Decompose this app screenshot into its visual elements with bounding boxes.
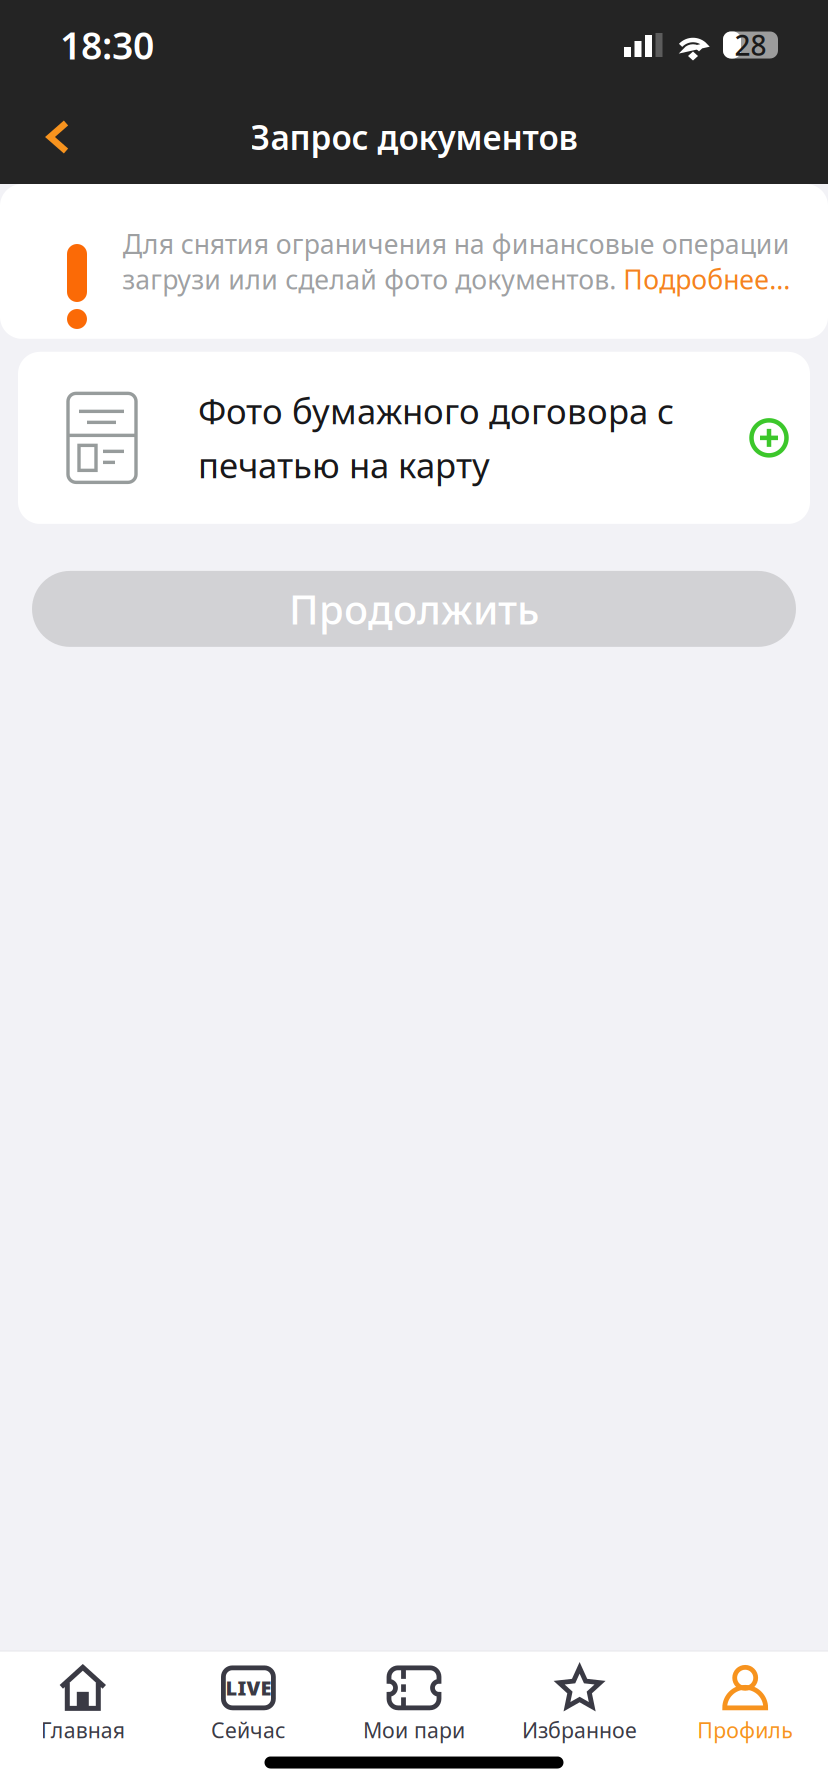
staticText: Главная — [41, 1716, 125, 1744]
button[interactable]: Профиль — [662, 1648, 828, 1752]
button[interactable]: Фото бумажного договора с печатью на кар… — [0, 352, 828, 524]
button[interactable]: Back — [0, 90, 116, 184]
staticText: Избранное — [522, 1716, 637, 1744]
staticText: Фото бумажного договора с печатью на кар… — [198, 388, 674, 488]
button[interactable]: Избранное — [497, 1648, 662, 1752]
staticText: Запрос документов — [250, 115, 577, 159]
staticText: Продолжить — [289, 582, 539, 635]
staticText: 28 — [734, 26, 766, 64]
staticText: Мои пари — [363, 1716, 465, 1744]
button[interactable]: Продолжить — [0, 571, 828, 647]
staticText: LIVE — [225, 1675, 271, 1701]
staticText: 18:30 — [60, 20, 154, 70]
button[interactable]: LIVE — [166, 1648, 331, 1752]
staticText: Сейчас — [211, 1716, 286, 1744]
button[interactable]: Главная — [0, 1648, 166, 1752]
staticText: Профиль — [697, 1716, 793, 1744]
staticText: Для снятия ограничения на финансовые опе… — [122, 226, 790, 297]
button[interactable]: Мои пари — [331, 1648, 497, 1752]
